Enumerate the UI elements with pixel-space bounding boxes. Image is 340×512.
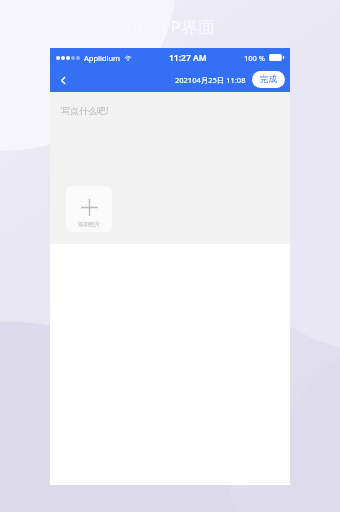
button[interactable]: Back bbox=[53, 70, 73, 90]
staticText: Applidium bbox=[84, 53, 121, 63]
staticText: 完成 bbox=[260, 74, 277, 85]
staticText: 11:27 AM bbox=[169, 52, 207, 64]
staticText: 100 % bbox=[244, 53, 266, 63]
button[interactable]: 完成 bbox=[252, 71, 285, 88]
button[interactable]: 添加照片 bbox=[66, 186, 112, 232]
staticText: 写点什么吧! bbox=[61, 104, 109, 116]
staticText: UI-APP界面 bbox=[125, 15, 215, 38]
staticText: 202104月25日 11:08 bbox=[175, 75, 246, 85]
staticText: 添加照片 bbox=[78, 221, 100, 228]
